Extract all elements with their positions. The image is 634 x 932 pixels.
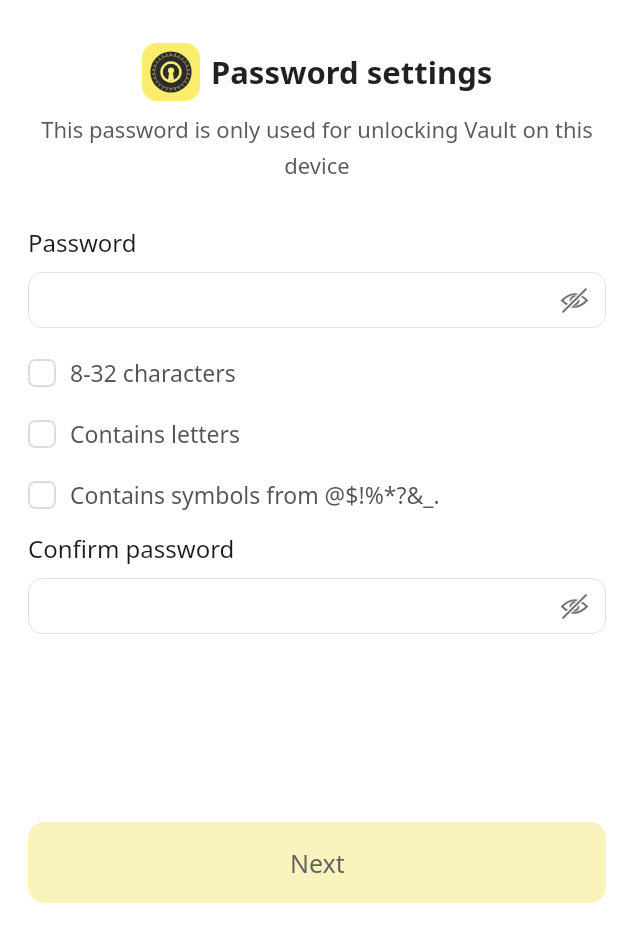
button[interactable]: 8-32 characters (28, 357, 606, 388)
button[interactable]: Show password (28, 272, 606, 328)
staticText: Contains letters (70, 418, 241, 449)
staticText: Password settings (211, 51, 493, 93)
staticText: 8-32 characters (70, 357, 236, 388)
button[interactable]: Show password (552, 278, 596, 322)
button[interactable]: Contains letters (28, 418, 606, 449)
staticText: Confirm password (28, 532, 235, 565)
staticText: Contains symbols from @$!%*?&_. (70, 479, 440, 510)
staticText: Password (28, 226, 137, 259)
button[interactable]: Next (28, 822, 606, 903)
staticText: This password is only used for unlocking… (22, 114, 612, 180)
button[interactable]: Show password (552, 584, 596, 628)
staticText: Next (290, 846, 345, 880)
button[interactable]: Contains symbols from @$!%*?&_. (28, 479, 606, 510)
button[interactable]: Show password (28, 578, 606, 634)
